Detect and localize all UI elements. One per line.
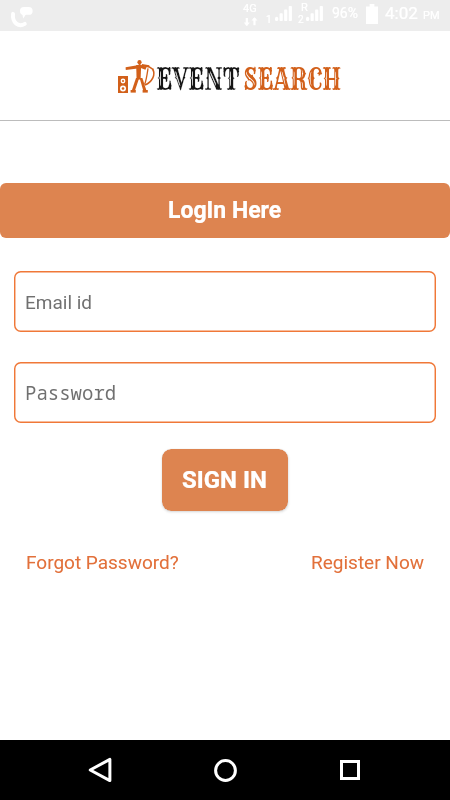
button[interactable]: Home: [203, 748, 247, 792]
staticText: Password: [25, 380, 117, 406]
staticText: SEARCH: [243, 60, 342, 96]
staticText: EVENT: [156, 60, 240, 96]
button[interactable]: Email id: [14, 271, 436, 332]
staticText: SIGN IN: [182, 466, 268, 494]
staticText: 2: [298, 14, 304, 26]
staticText: 4G: [243, 2, 257, 15]
button[interactable]: Back: [78, 747, 124, 793]
button[interactable]: SIGN IN: [162, 449, 288, 511]
staticText: Email id: [25, 291, 93, 313]
button[interactable]: Password: [14, 362, 436, 423]
button[interactable]: LogIn Here: [0, 183, 450, 238]
button[interactable]: Forgot Password?: [26, 551, 179, 573]
staticText: 4:02: [385, 3, 418, 23]
button[interactable]: Recent apps: [328, 748, 372, 792]
staticText: 96%: [332, 5, 358, 21]
staticText: PM: [423, 9, 440, 22]
staticText: 1: [266, 14, 272, 26]
button[interactable]: Register Now: [311, 551, 424, 573]
staticText: LogIn Here: [168, 197, 282, 224]
staticText: R: [301, 1, 308, 14]
